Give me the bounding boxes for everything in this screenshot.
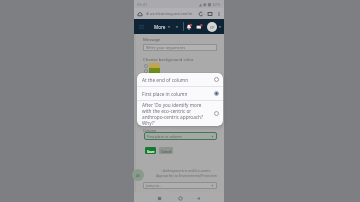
staticText: AE: [136, 173, 141, 178]
staticText: ▲ ● ■ 82%: [199, 2, 221, 7]
staticText: Column: [143, 128, 157, 133]
staticText: 09:41: [137, 2, 148, 7]
staticText: Cancel: [161, 149, 172, 153]
button[interactable]: Write your arguments: [143, 44, 217, 51]
staticText: At the end of column: [142, 77, 189, 83]
staticText: First place in column: [142, 91, 188, 97]
button[interactable]: First place in column: [137, 87, 223, 100]
button[interactable]: Messages: [195, 23, 203, 31]
button[interactable]: Home: [176, 194, 185, 202]
button[interactable]: Jump to...: [143, 182, 217, 189]
button[interactable]: Reload: [198, 11, 204, 17]
button[interactable]: More: [154, 22, 171, 31]
button[interactable]: Menu: [138, 23, 145, 30]
button[interactable]: Cancel: [159, 147, 173, 154]
staticText: CP: [210, 25, 215, 30]
staticText: ‹ Anthropocentric and Eco-centric: [161, 169, 211, 173]
staticText: Choose background color: [143, 57, 194, 63]
staticText: Approaches to Environmental Protection: [156, 174, 217, 178]
button[interactable]: Menu: [216, 11, 222, 17]
button[interactable]: [144, 63, 160, 68]
button[interactable]: [144, 68, 160, 73]
button[interactable]: Notifications: [185, 23, 193, 31]
button[interactable]: Tabs: [207, 11, 213, 17]
button[interactable]: After 'Do you identify more with the eco…: [137, 101, 223, 126]
staticText: After 'Do you identify more with the eco…: [142, 102, 204, 126]
button[interactable]: First place in column: [144, 132, 217, 140]
staticText: Write your arguments: [146, 45, 186, 50]
staticText: Jump to...: [146, 183, 162, 188]
staticText: us.elearning.avt.one/m: [150, 11, 193, 16]
button[interactable]: Recents: [155, 194, 164, 202]
button[interactable]: Home: [137, 11, 143, 17]
button[interactable]: Back: [194, 194, 203, 202]
staticText: More: [154, 24, 166, 30]
staticText: First place in column: [147, 134, 182, 139]
button[interactable]: At the end of column: [137, 73, 223, 86]
button[interactable]: CP: [207, 22, 222, 32]
staticText: Save: [147, 149, 155, 153]
staticText: Message: [143, 37, 161, 43]
button[interactable]: Save: [145, 147, 156, 154]
